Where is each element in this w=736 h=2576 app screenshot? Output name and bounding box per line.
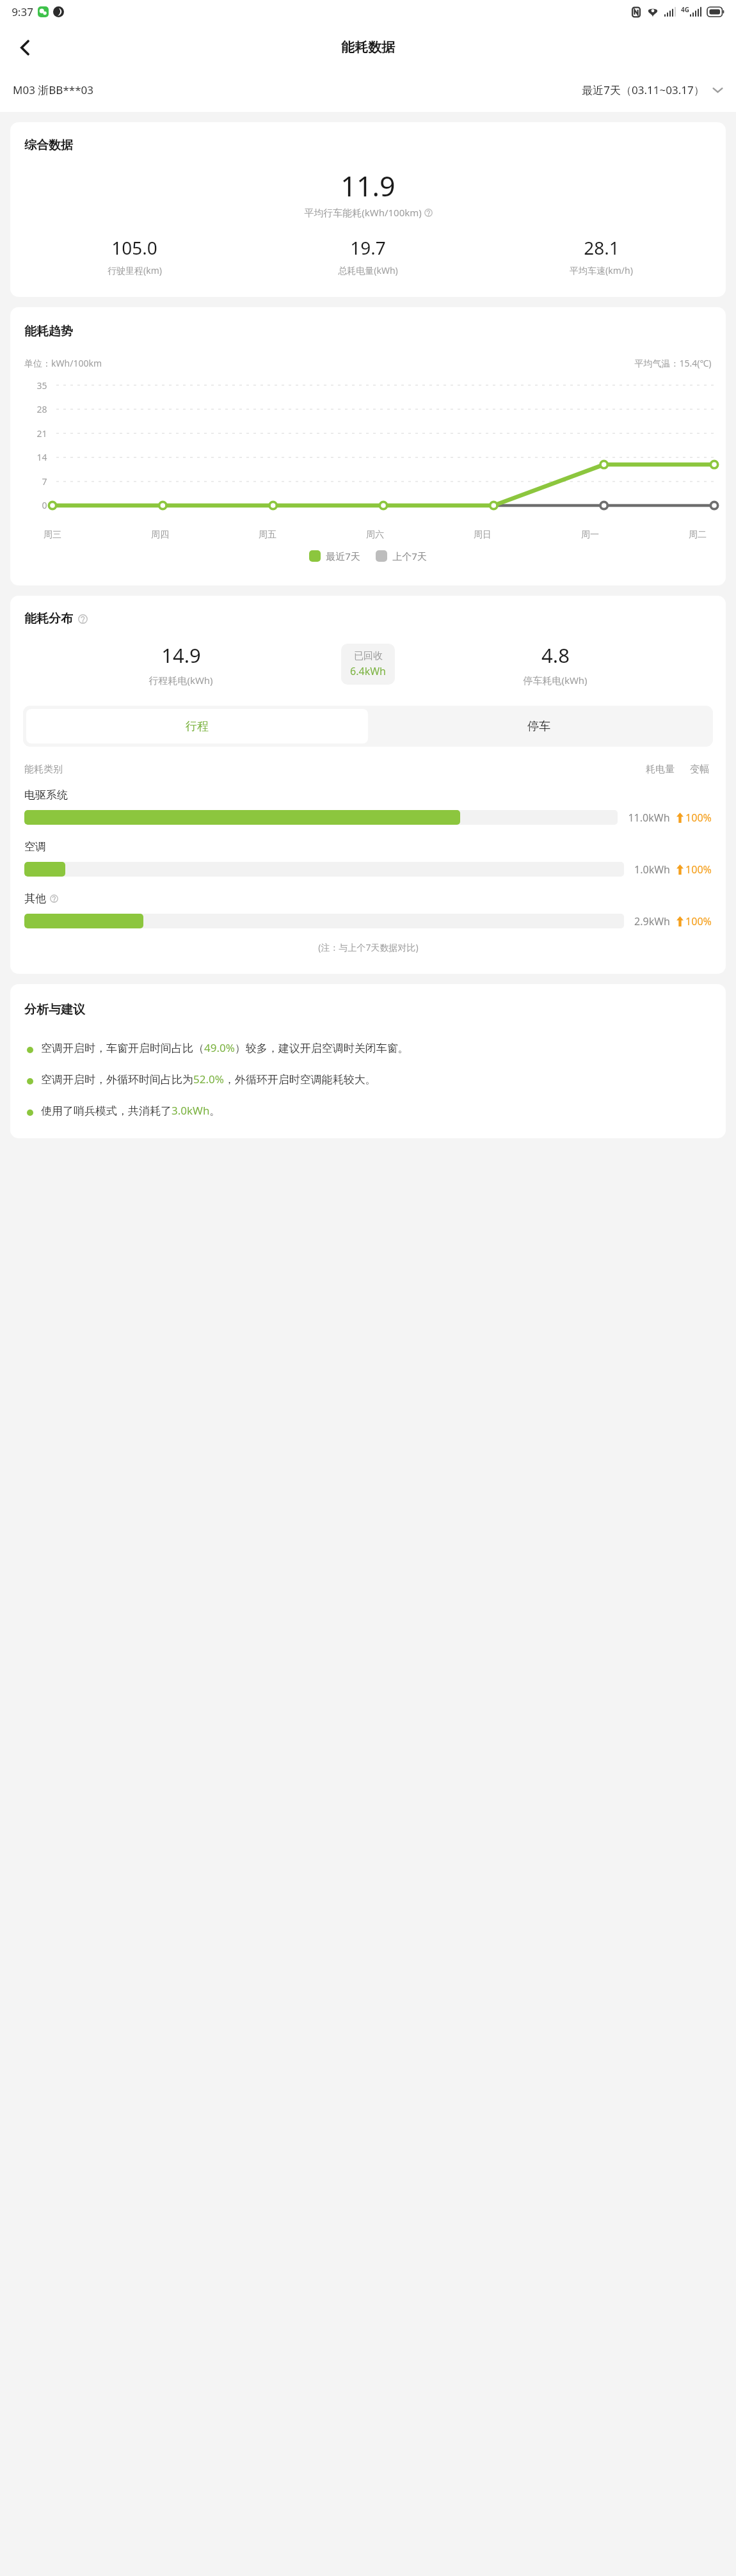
staticText: 周六 xyxy=(366,529,384,541)
staticText: 行程 xyxy=(186,719,209,734)
staticText: 能耗趋势 xyxy=(24,324,73,339)
staticText: 14.9 xyxy=(161,642,201,669)
staticText: 能耗数据 xyxy=(341,39,395,56)
staticText: 1.0kWh xyxy=(634,863,670,877)
button[interactable]: Back xyxy=(10,33,40,62)
staticText: 空调开启时，车窗开启时间占比（49.0%）较多，建议开启空调时关闭车窗。 xyxy=(41,1040,409,1055)
staticText: 变幅 xyxy=(690,763,709,775)
staticText: 单位：kWh/100km xyxy=(24,357,102,369)
staticText: 已回收 xyxy=(354,650,383,662)
button[interactable]: 行程 xyxy=(26,709,368,743)
staticText: 11.9 xyxy=(340,167,396,205)
staticText: 100% xyxy=(685,914,712,928)
staticText: 空调 xyxy=(24,840,46,854)
staticText: 耗电量 xyxy=(646,763,675,775)
staticText: 105.0 xyxy=(111,235,157,260)
staticText: 7 xyxy=(42,475,47,488)
staticText: 最近7天 xyxy=(326,550,360,562)
staticText: 空调开启时，外循环时间占比为52.0%，外循环开启时空调能耗较大。 xyxy=(41,1072,376,1086)
staticText: M03 浙BB***03 xyxy=(13,83,93,97)
staticText: 6.4kWh xyxy=(350,664,386,678)
staticText: 上个7天 xyxy=(392,550,427,562)
staticText: 100% xyxy=(685,811,712,825)
staticText: 周二 xyxy=(689,529,707,541)
staticText: 平均气温：15.4(℃) xyxy=(634,357,712,369)
staticText: 4G xyxy=(681,5,689,14)
staticText: (注：与上个7天数据对比) xyxy=(318,941,419,953)
staticText: 周一 xyxy=(581,529,599,541)
staticText: 周五 xyxy=(259,529,276,541)
staticText: 最近7天（03.11~03.17） xyxy=(582,83,705,97)
staticText: 行程耗电(kWh) xyxy=(148,674,213,687)
staticText: 平均车速(km/h) xyxy=(570,264,633,276)
staticText: 28.1 xyxy=(584,235,620,260)
staticText: 28 xyxy=(36,403,47,415)
staticText: 综合数据 xyxy=(24,138,73,153)
staticText: 平均行车能耗(kWh/100km) xyxy=(304,206,422,219)
staticText: 停车耗电(kWh) xyxy=(523,674,588,687)
staticText: 14 xyxy=(36,451,47,463)
staticText: 总耗电量(kWh) xyxy=(338,264,398,276)
staticText: 行驶里程(km) xyxy=(108,264,162,276)
staticText: 11.0kWh xyxy=(628,811,670,825)
staticText: 100% xyxy=(685,863,712,877)
staticText: 周三 xyxy=(44,529,61,541)
staticText: 19.7 xyxy=(350,235,386,260)
staticText: 其他 xyxy=(24,892,46,905)
button[interactable]: 停车 xyxy=(368,709,710,743)
staticText: 使用了哨兵模式，共消耗了3.0kWh。 xyxy=(41,1103,221,1118)
staticText: 周四 xyxy=(151,529,169,541)
staticText: 4.8 xyxy=(541,642,570,669)
staticText: 电驱系统 xyxy=(24,788,68,802)
staticText: 35 xyxy=(36,379,47,392)
staticText: 能耗分布 xyxy=(24,611,73,626)
staticText: 0 xyxy=(42,499,47,511)
staticText: 9:37 xyxy=(12,4,33,19)
staticText: 停车 xyxy=(527,719,550,734)
staticText: 能耗类别 xyxy=(24,763,63,775)
staticText: 2.9kWh xyxy=(634,914,670,928)
staticText: 周日 xyxy=(474,529,492,541)
staticText: 21 xyxy=(36,427,47,440)
staticText: 分析与建议 xyxy=(24,1002,85,1017)
button[interactable]: 最近7天（03.11~03.17） xyxy=(582,79,723,101)
